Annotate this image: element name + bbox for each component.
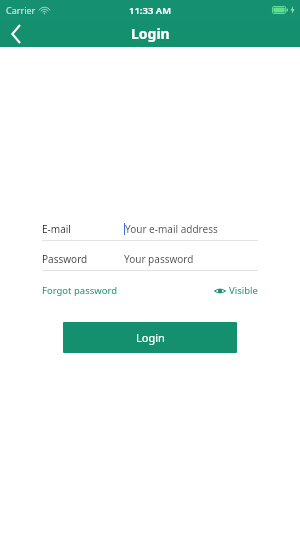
staticText: Your password [124,252,194,266]
staticText: Carrier [6,4,36,16]
button[interactable]: Visible [214,281,258,300]
button[interactable]: Back [0,20,32,47]
staticText: Login [136,330,165,345]
staticText: Login [131,24,170,43]
staticText: Visible [229,284,258,297]
button[interactable]: Login [63,322,237,353]
staticText: Password [42,252,124,266]
staticText: 11:33 AM [129,4,172,17]
staticText: Forgot password [42,284,118,297]
staticText: Your e-mail address [125,222,218,236]
staticText: E-mail [42,222,124,236]
button[interactable]: Password [42,248,258,270]
button[interactable]: Forgot password [42,281,118,300]
button[interactable]: E-mail [42,218,258,240]
